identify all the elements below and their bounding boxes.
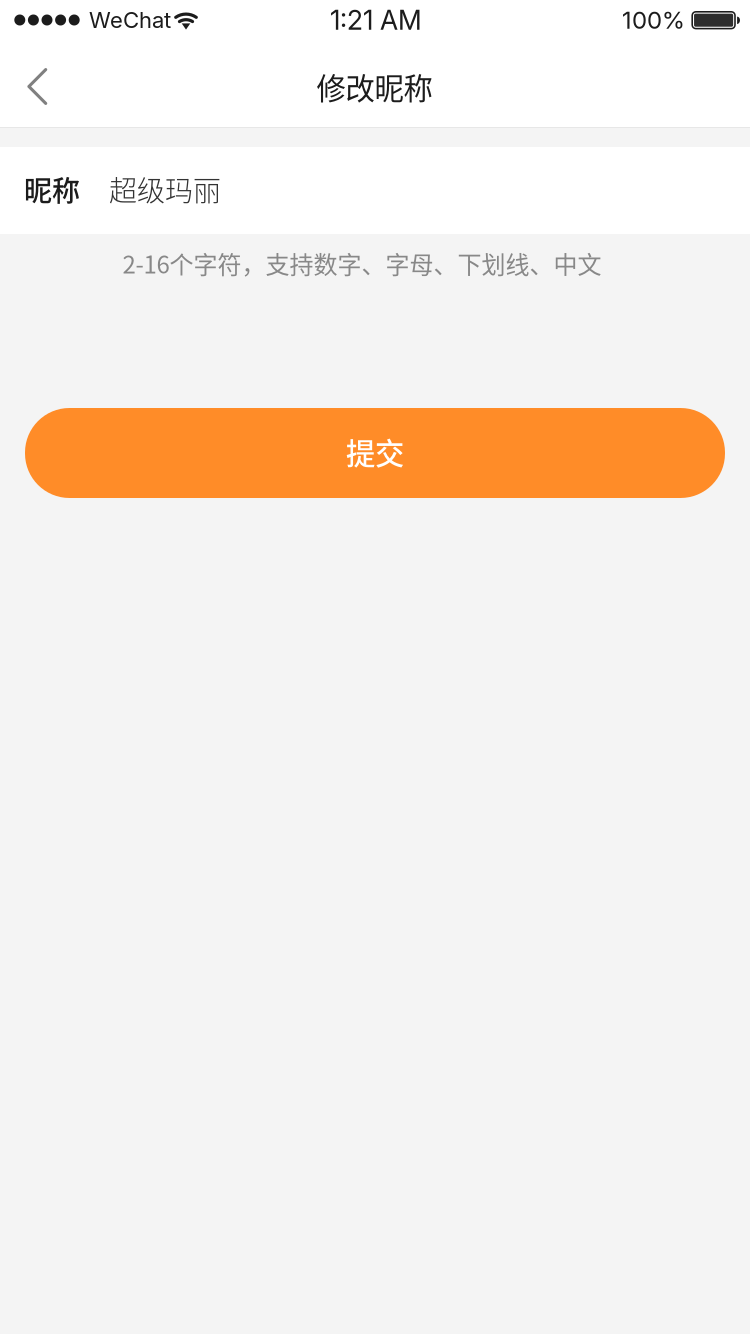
button[interactable]: Back — [0, 43, 76, 130]
staticText: 修改昵称 — [316, 65, 432, 108]
staticText: 提交 — [346, 430, 404, 473]
staticText: 1:21 AM — [330, 4, 422, 36]
staticText: 2-16个字符，支持数字、字母、下划线、中文 — [122, 246, 601, 280]
staticText: 昵称 — [24, 169, 80, 209]
staticText: 超级玛丽 — [109, 169, 221, 209]
staticText: 100% — [622, 5, 685, 34]
button[interactable]: 昵称 — [0, 147, 750, 234]
button[interactable]: 提交 — [25, 408, 725, 498]
staticText: WeChat — [89, 7, 171, 33]
